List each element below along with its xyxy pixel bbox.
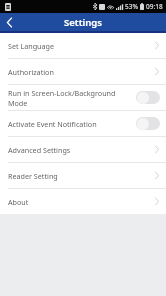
button[interactable]: Advanced Settings [0, 137, 166, 162]
button[interactable]: Run in Screen-Lock/Background Mode [0, 85, 166, 110]
staticText: Set Language [8, 41, 155, 51]
staticText: 09:18 [146, 2, 163, 11]
button[interactable]: Activate Event Notification [0, 111, 166, 136]
button[interactable]: Reader Setting [0, 163, 166, 188]
button[interactable]: Authorization [0, 59, 166, 84]
button[interactable]: Back [0, 13, 18, 31]
staticText: Settings [0, 16, 166, 29]
staticText: About [8, 197, 155, 207]
staticText: Authorization [8, 67, 155, 77]
button[interactable]: Toggle Activate Event Notification [136, 117, 160, 130]
staticText: 53% [125, 2, 138, 11]
staticText: Reader Setting [8, 171, 155, 181]
button[interactable]: About [0, 189, 166, 214]
button[interactable]: Set Language [0, 33, 166, 58]
staticText: Activate Event Notification [8, 119, 133, 129]
button[interactable]: Toggle Run in Screen-Lock/Background Mod… [136, 91, 160, 104]
staticText: Advanced Settings [8, 145, 155, 155]
staticText: Run in Screen-Lock/Background Mode [8, 88, 133, 108]
